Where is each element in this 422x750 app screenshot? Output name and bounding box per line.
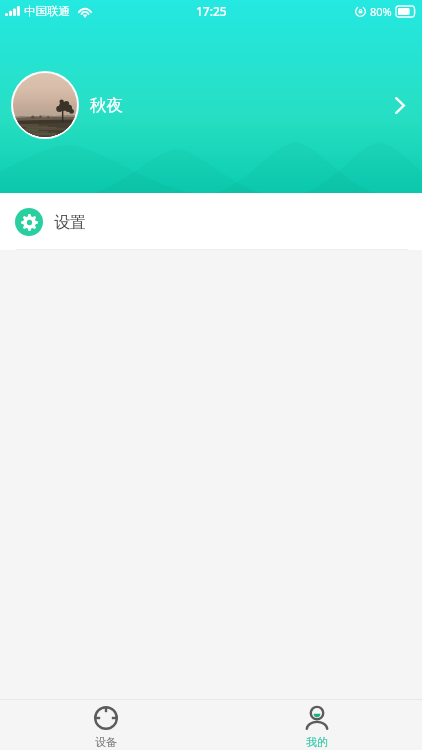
button[interactable]: Avatar — [13, 73, 77, 137]
staticText: 秋夜 — [90, 95, 123, 116]
staticText: 我的 — [306, 735, 328, 749]
button[interactable]: Profile details — [378, 83, 422, 127]
staticText: 设备 — [95, 735, 117, 749]
button[interactable]: 设备 — [0, 700, 211, 750]
button[interactable]: 设置 — [0, 193, 422, 249]
staticText: 17:25 — [196, 3, 227, 19]
staticText: 80% — [370, 4, 392, 19]
staticText: 设置 — [54, 213, 86, 233]
button[interactable]: 我的 — [211, 700, 422, 750]
staticText: 中国联通 — [24, 4, 70, 18]
